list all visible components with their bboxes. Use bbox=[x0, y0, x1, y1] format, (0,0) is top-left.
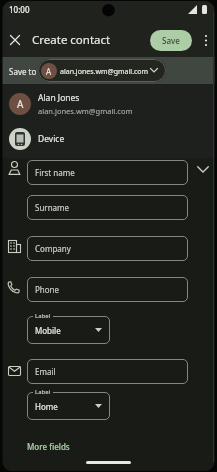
button[interactable]: More fields bbox=[24, 438, 73, 455]
button[interactable]: Save bbox=[150, 30, 192, 51]
staticText: Save to bbox=[9, 66, 37, 77]
button[interactable]: First name bbox=[27, 160, 188, 185]
button[interactable]: Surname bbox=[27, 195, 188, 220]
button[interactable]: Device bbox=[0, 124, 217, 154]
button[interactable]: Email bbox=[27, 359, 188, 384]
staticText: Mobile bbox=[35, 325, 61, 336]
staticText: Company bbox=[35, 243, 71, 254]
staticText: alan.jones.wm@gmail.com bbox=[60, 67, 149, 77]
staticText: More fields bbox=[27, 441, 70, 452]
staticText: 10:00 bbox=[9, 4, 30, 15]
button[interactable]: Company bbox=[27, 236, 188, 261]
staticText: Label bbox=[35, 388, 51, 396]
staticText: Home bbox=[35, 401, 58, 412]
button[interactable]: A bbox=[38, 59, 166, 82]
staticText: Label bbox=[35, 312, 51, 320]
staticText: Alan Jones bbox=[38, 92, 80, 104]
staticText: A bbox=[17, 97, 24, 111]
button[interactable]: Phone bbox=[27, 277, 188, 302]
button[interactable]: A bbox=[0, 86, 217, 122]
button[interactable] bbox=[201, 34, 211, 47]
staticText: Create contact bbox=[32, 32, 111, 48]
staticText: Surname bbox=[35, 202, 70, 213]
button[interactable] bbox=[197, 166, 209, 173]
staticText: Email bbox=[35, 366, 56, 377]
button[interactable] bbox=[10, 35, 20, 45]
staticText: Device bbox=[38, 133, 65, 145]
button[interactable]: Mobile bbox=[27, 316, 110, 344]
staticText: Phone bbox=[35, 284, 60, 295]
staticText: First name bbox=[35, 167, 75, 178]
button[interactable]: Home bbox=[27, 392, 110, 420]
staticText: Save bbox=[162, 35, 180, 46]
staticText: alan.jones.wm@gmail.com bbox=[38, 106, 133, 116]
staticText: A bbox=[46, 66, 52, 77]
